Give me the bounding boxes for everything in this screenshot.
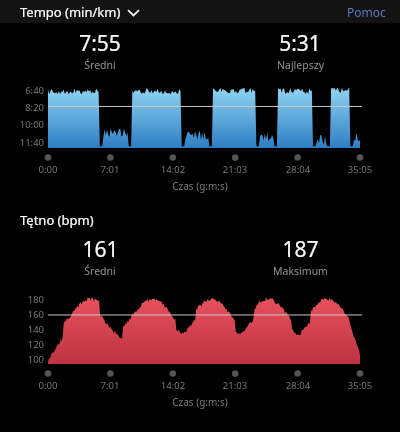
staticText: Czas (g:m:s) [0,179,400,193]
staticText: Średni [84,58,116,72]
staticText: 160 [4,308,44,321]
staticText: 6:40 [4,84,44,97]
staticText: Najlepszy [277,58,324,72]
staticText: 35:05 [338,163,382,176]
staticText: 120 [4,338,44,351]
staticText: 140 [4,323,44,336]
staticText: Tętno (bpm) [20,211,94,229]
button[interactable]: Tempo (min/km) [0,1,149,23]
staticText: 21:03 [213,163,257,176]
staticText: 7:01 [88,379,132,392]
staticText: 14:02 [151,379,195,392]
staticText: 7:55 [79,29,121,58]
staticText: Maksimum [273,264,328,278]
staticText: 7:01 [88,163,132,176]
staticText: 11:40 [4,136,44,149]
staticText: 161 [82,235,119,264]
staticText: 8:20 [4,101,44,114]
staticText: 5:31 [279,29,321,58]
button[interactable]: Pomoc [337,1,400,23]
staticText: 180 [4,293,44,306]
staticText: 21:03 [213,379,257,392]
staticText: 10:00 [4,118,44,131]
staticText: 28:04 [276,163,320,176]
staticText: Średni [84,264,116,278]
staticText: 0:00 [26,163,70,176]
staticText: 100 [4,353,44,366]
staticText: 0:00 [26,379,70,392]
staticText: 35:05 [338,379,382,392]
staticText: Pomoc [347,4,386,20]
staticText: 14:02 [151,163,195,176]
staticText: 187 [282,235,319,264]
staticText: Tempo (min/km) [20,3,121,21]
staticText: Czas (g:m:s) [0,395,400,409]
staticText: 28:04 [276,379,320,392]
